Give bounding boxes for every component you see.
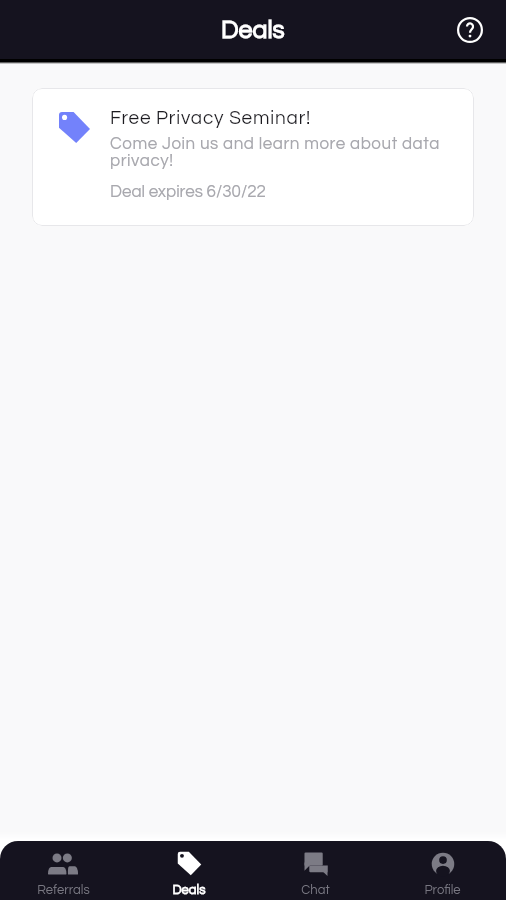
button[interactable]: Chat [252,841,379,900]
staticText: Deals [221,17,285,43]
staticText: Come Join us and learn more about data p… [110,135,455,169]
staticText: Profile [424,883,461,896]
button[interactable]: Help [450,10,490,50]
staticText: Referrals [37,883,90,896]
button[interactable]: Free Privacy Seminar! [32,88,474,226]
staticText: Deals [172,883,206,896]
staticText: Free Privacy Seminar! [110,108,312,128]
button[interactable]: Referrals [0,841,126,900]
staticText: Chat [301,883,330,896]
staticText: Deal expires 6/30/22 [110,183,266,201]
button[interactable]: Deals [126,841,252,900]
button[interactable]: Profile [379,841,506,900]
